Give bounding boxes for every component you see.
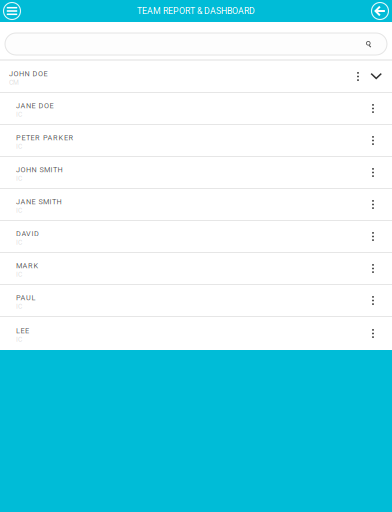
staticText: MARK: [16, 261, 38, 270]
button[interactable]: JANE DOE: [0, 93, 392, 124]
staticText: JANE DOE: [16, 101, 53, 110]
button[interactable]: Menu: [2, 1, 22, 21]
staticText: IC: [16, 207, 22, 214]
staticText: IC: [16, 143, 22, 150]
staticText: IC: [16, 271, 22, 278]
staticText: PAUL: [16, 293, 35, 302]
button[interactable]: JANE SMITH: [0, 189, 392, 220]
staticText: IC: [16, 175, 22, 182]
button[interactable]: DAVID: [0, 221, 392, 252]
button[interactable]: PAUL: [0, 285, 392, 316]
button[interactable]: MARK: [0, 253, 392, 284]
staticText: JANE SMITH: [16, 197, 61, 206]
staticText: IC: [16, 303, 22, 310]
staticText: JOHN SMITH: [16, 165, 62, 174]
staticText: PETER PARKER: [16, 133, 73, 142]
staticText: IC: [16, 111, 22, 118]
button[interactable]: JOHN SMITH: [0, 157, 392, 188]
staticText: IC: [16, 239, 22, 246]
staticText: JOHN DOE: [9, 69, 47, 78]
button[interactable]: PETER PARKER: [0, 125, 392, 156]
button[interactable]: LEE: [0, 317, 392, 350]
staticText: IC: [16, 336, 22, 343]
staticText: LEE: [16, 326, 29, 335]
staticText: DAVID: [16, 229, 39, 238]
staticText: TEAM REPORT & DASHBOARD: [137, 6, 255, 16]
button[interactable]: Back: [370, 1, 390, 21]
button[interactable]: JOHN DOE: [0, 61, 392, 92]
button[interactable]: [0, 22, 392, 59]
staticText: CM: [9, 79, 19, 86]
